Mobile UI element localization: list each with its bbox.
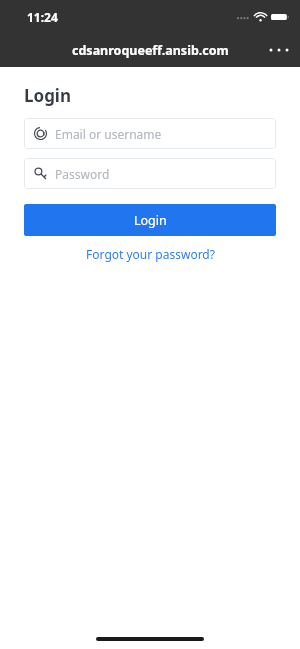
staticText: Login: [24, 84, 72, 107]
button[interactable]: Login: [24, 204, 276, 236]
button[interactable]: More options: [263, 34, 295, 66]
staticText: 11:24: [27, 9, 58, 25]
staticText: cdsanroqueeff.ansib.com: [72, 42, 229, 59]
button[interactable]: Forgot your password?: [24, 246, 276, 262]
staticText: Forgot your password?: [86, 246, 215, 262]
staticText: Email or username: [55, 126, 162, 142]
button[interactable]: Password: [24, 158, 276, 189]
staticText: Password: [55, 166, 110, 182]
staticText: Login: [134, 212, 167, 229]
button[interactable]: Email or username: [24, 118, 276, 149]
